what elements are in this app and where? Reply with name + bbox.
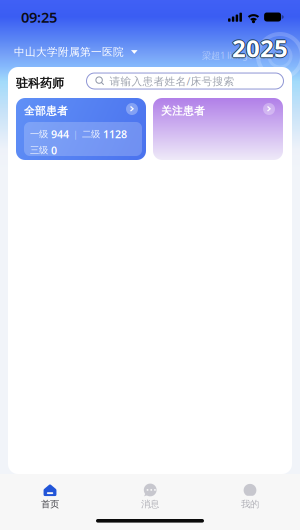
staticText: 944 (51, 127, 69, 141)
button[interactable]: 首页 (0, 480, 100, 514)
staticText: 2025 (232, 33, 288, 65)
button[interactable]: 中山大学附属第一医院 (6, 42, 146, 62)
staticText: 2025 (232, 32, 288, 64)
staticText: 关注患者 (161, 104, 205, 118)
staticText: 0 (51, 143, 57, 157)
button[interactable]: 全部患者 (16, 98, 146, 160)
staticText: 1128 (103, 127, 127, 141)
button[interactable]: 请输入患者姓名/床号搜索 (86, 73, 283, 89)
staticText: 三级 (30, 144, 51, 156)
staticText: 消息 (141, 498, 159, 510)
staticText: 中山大学附属第一医院 (14, 45, 124, 58)
staticText: 首页 (41, 498, 59, 510)
staticText: 2025 (232, 31, 288, 63)
staticText: 2025 (233, 32, 289, 64)
staticText: 2025 (231, 32, 287, 64)
button[interactable]: 我的 (200, 480, 300, 514)
staticText: 驻科药师 (16, 76, 64, 91)
staticText: 全部患者 (24, 104, 68, 118)
staticText: 二级 (82, 128, 103, 140)
staticText: 请输入患者姓名/床号搜索 (109, 74, 234, 88)
staticText: 一级 (30, 128, 51, 140)
staticText: | (69, 128, 82, 140)
button[interactable]: 关注患者 (153, 98, 283, 160)
staticText: 09:25 (21, 7, 57, 27)
staticText: 梁超1 liangchao (202, 49, 269, 61)
button[interactable]: 消息 (100, 480, 200, 514)
staticText: 我的 (241, 498, 259, 510)
